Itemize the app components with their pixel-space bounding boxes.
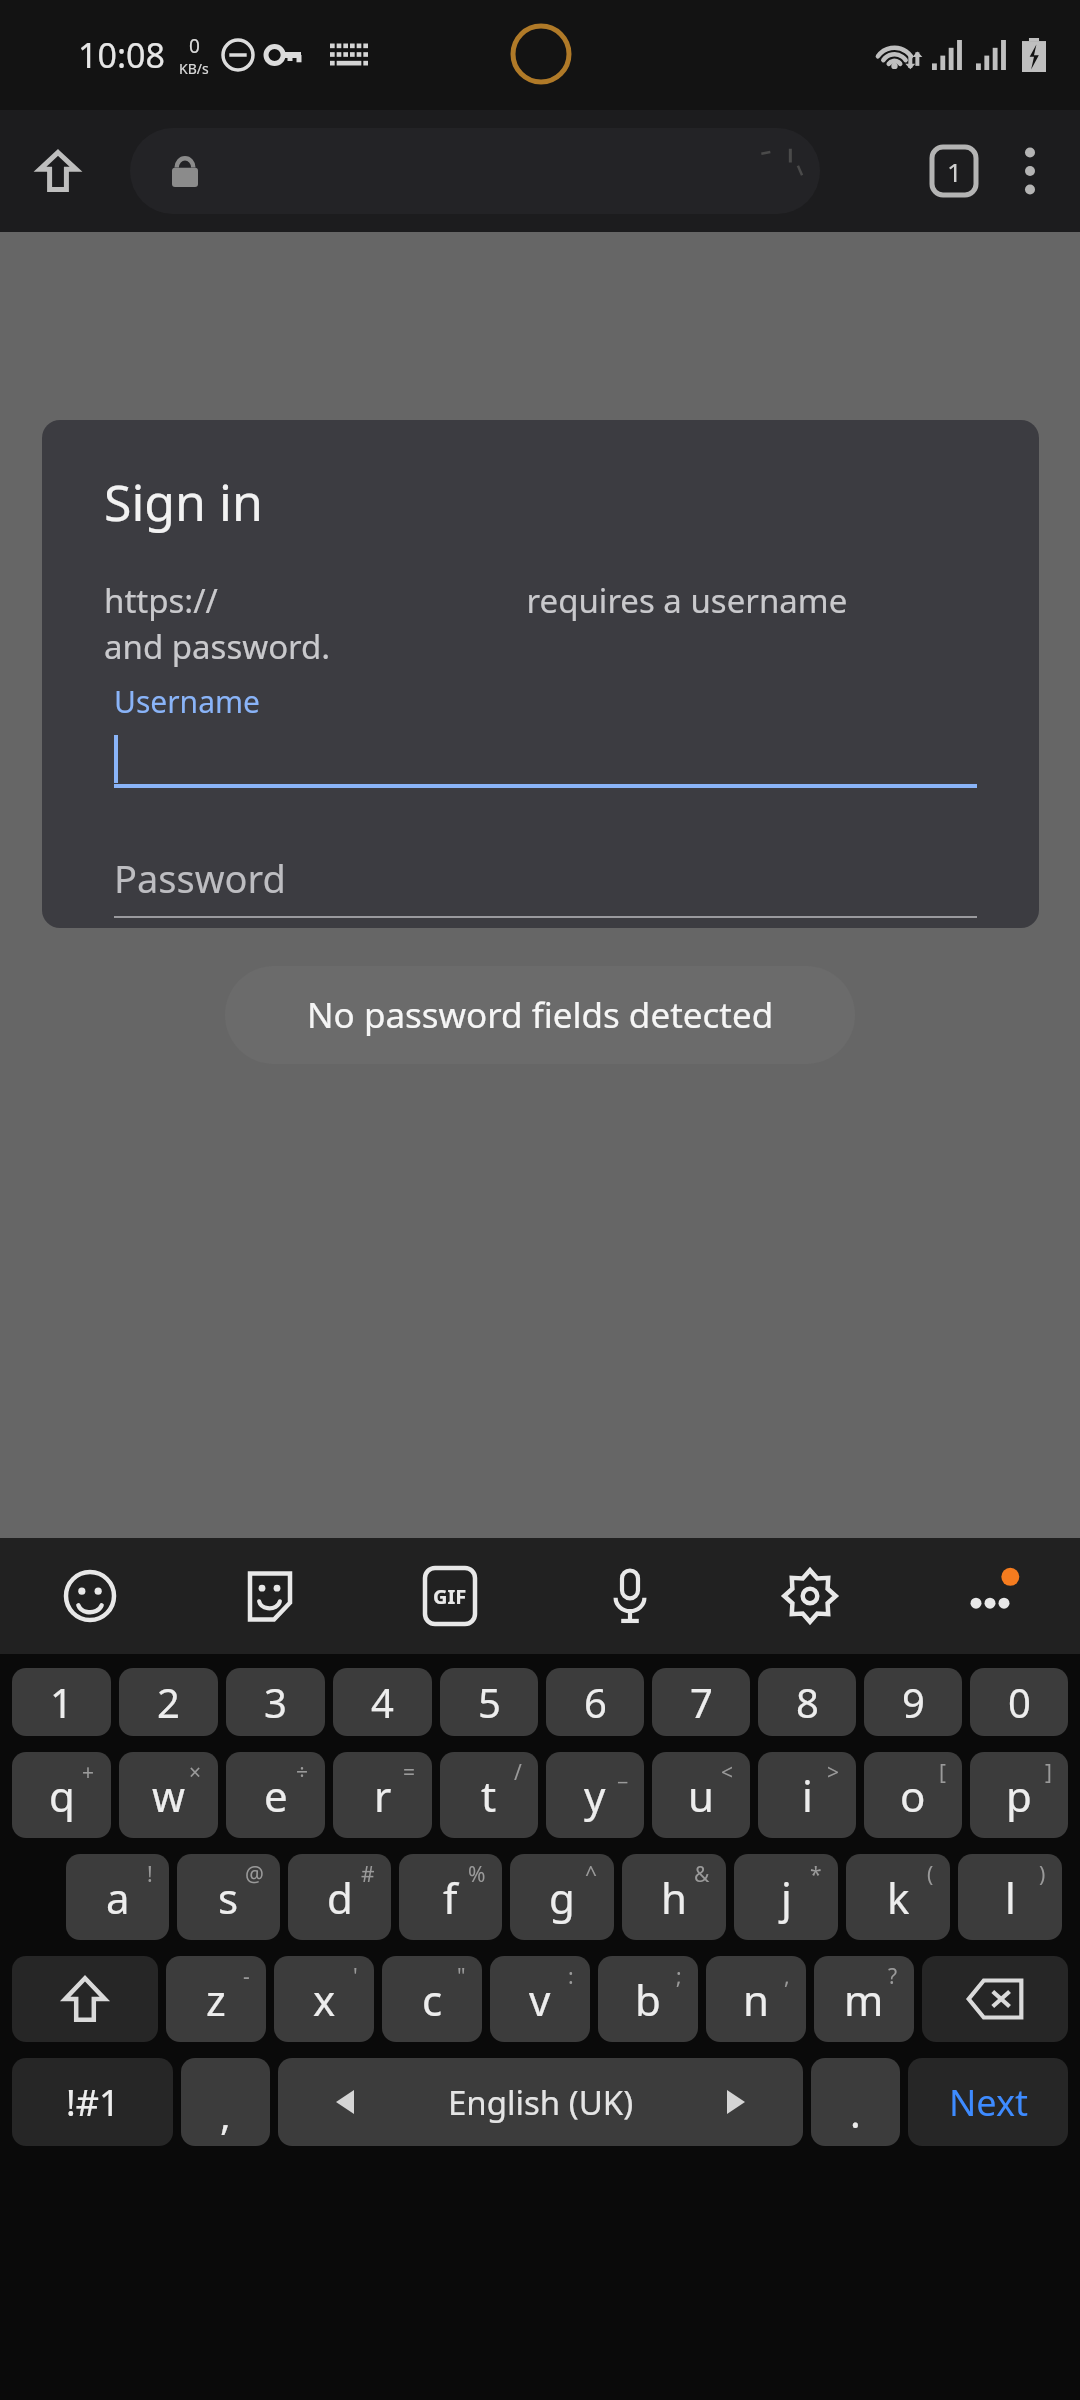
staticText: ^ <box>585 1860 598 1889</box>
button[interactable]: j <box>734 1854 838 1940</box>
button[interactable]: . <box>811 2058 900 2146</box>
button[interactable]: 0 <box>970 1668 1068 1736</box>
staticText: [ <box>939 1758 946 1787</box>
button[interactable]: h <box>622 1854 726 1940</box>
button[interactable]: , <box>181 2058 270 2146</box>
button[interactable]: More options <box>994 135 1066 207</box>
staticText: i <box>802 1767 813 1824</box>
staticText: g <box>549 1869 575 1926</box>
button[interactable]: x <box>274 1956 374 2042</box>
button[interactable]: Voice input <box>540 1538 720 1654</box>
staticText: 9 <box>902 1675 925 1729</box>
button[interactable]: g <box>510 1854 614 1940</box>
staticText: f <box>443 1869 458 1926</box>
button[interactable]: GIF <box>360 1538 540 1654</box>
button[interactable]: 9 <box>864 1668 962 1736</box>
button[interactable]: a <box>66 1854 169 1940</box>
button[interactable]: m <box>814 1956 914 2042</box>
staticText: e <box>264 1767 288 1824</box>
button[interactable]: 4 <box>333 1668 432 1736</box>
staticText: r <box>374 1767 392 1824</box>
staticText: t <box>481 1767 497 1824</box>
button[interactable]: !#1 <box>12 2058 173 2146</box>
staticText: = <box>403 1758 416 1787</box>
staticText: . <box>850 2085 861 2139</box>
staticText: 8 <box>796 1675 819 1729</box>
button[interactable]: i <box>758 1752 856 1838</box>
button[interactable]: Backspace <box>922 1956 1068 2042</box>
staticText: c <box>422 1971 443 2028</box>
button[interactable]: Stickers <box>180 1538 360 1654</box>
button[interactable]: Next <box>908 2058 1068 2146</box>
staticText: ' <box>353 1962 358 1991</box>
staticText: u <box>688 1767 714 1824</box>
button[interactable]: Shift <box>12 1956 158 2042</box>
button[interactable]: q <box>12 1752 111 1838</box>
button[interactable]: o <box>864 1752 962 1838</box>
staticText: ) <box>1039 1860 1046 1889</box>
staticText: j <box>781 1869 792 1926</box>
staticText: _ <box>618 1758 628 1787</box>
staticText: v <box>529 1971 551 2028</box>
staticText: " <box>457 1962 466 1991</box>
staticText: m <box>844 1971 884 2028</box>
button[interactable]: 7 <box>652 1668 750 1736</box>
button[interactable]: s <box>177 1854 280 1940</box>
button[interactable]: w <box>119 1752 218 1838</box>
button[interactable]: b <box>598 1956 698 2042</box>
button[interactable]: v <box>490 1956 590 2042</box>
button[interactable] <box>130 128 820 214</box>
staticText: x <box>313 1971 336 2028</box>
staticText: b <box>635 1971 661 2028</box>
button[interactable]: f <box>399 1854 502 1940</box>
staticText: 0 <box>189 33 200 59</box>
button[interactable]: 1 <box>12 1668 111 1736</box>
button[interactable]: 3 <box>226 1668 325 1736</box>
staticText: https:// requires a username and passwor… <box>104 578 848 669</box>
button[interactable]: More <box>900 1538 1080 1654</box>
button[interactable]: n <box>706 1956 806 2042</box>
staticText: p <box>1006 1767 1032 1824</box>
button[interactable]: u <box>652 1752 750 1838</box>
button[interactable]: Keyboard settings <box>720 1538 900 1654</box>
button[interactable]: Tabs, 1 open <box>918 135 990 207</box>
staticText: d <box>327 1869 353 1926</box>
staticText: 6 <box>584 1675 607 1729</box>
staticText: KB/s <box>179 59 209 78</box>
staticText: English (UK) <box>448 2080 634 2125</box>
staticText: 2 <box>157 1675 180 1729</box>
staticText: Sign in <box>104 468 263 536</box>
button[interactable]: Emoji <box>0 1538 180 1654</box>
button[interactable]: p <box>970 1752 1068 1838</box>
staticText: 5 <box>478 1675 501 1729</box>
button[interactable]: l <box>958 1854 1062 1940</box>
button[interactable]: Home <box>20 133 96 209</box>
staticText: No password fields detected <box>307 991 774 1039</box>
button[interactable]: y <box>546 1752 644 1838</box>
staticText: l <box>1005 1869 1016 1926</box>
staticText: y <box>584 1767 606 1824</box>
button[interactable]: 6 <box>546 1668 644 1736</box>
button[interactable]: t <box>440 1752 538 1838</box>
staticText: + <box>82 1758 95 1787</box>
staticText: 4 <box>371 1675 394 1729</box>
staticText: Next <box>949 2078 1028 2127</box>
button[interactable]: d <box>288 1854 391 1940</box>
staticText: q <box>49 1767 75 1824</box>
staticText: 3 <box>264 1675 287 1729</box>
staticText: ? <box>888 1962 898 1991</box>
button[interactable]: k <box>846 1854 950 1940</box>
staticText: @ <box>245 1860 264 1889</box>
button[interactable]: r <box>333 1752 432 1838</box>
button[interactable]: z <box>166 1956 266 2042</box>
button[interactable]: 2 <box>119 1668 218 1736</box>
button[interactable]: 5 <box>440 1668 538 1736</box>
button[interactable]: c <box>382 1956 482 2042</box>
staticText: < <box>721 1758 734 1787</box>
button[interactable]: e <box>226 1752 325 1838</box>
button[interactable]: 8 <box>758 1668 856 1736</box>
button[interactable]: Space, English (UK) <box>278 2058 803 2146</box>
staticText: / <box>514 1758 522 1787</box>
staticText: s <box>218 1869 239 1926</box>
staticText: o <box>900 1767 926 1824</box>
